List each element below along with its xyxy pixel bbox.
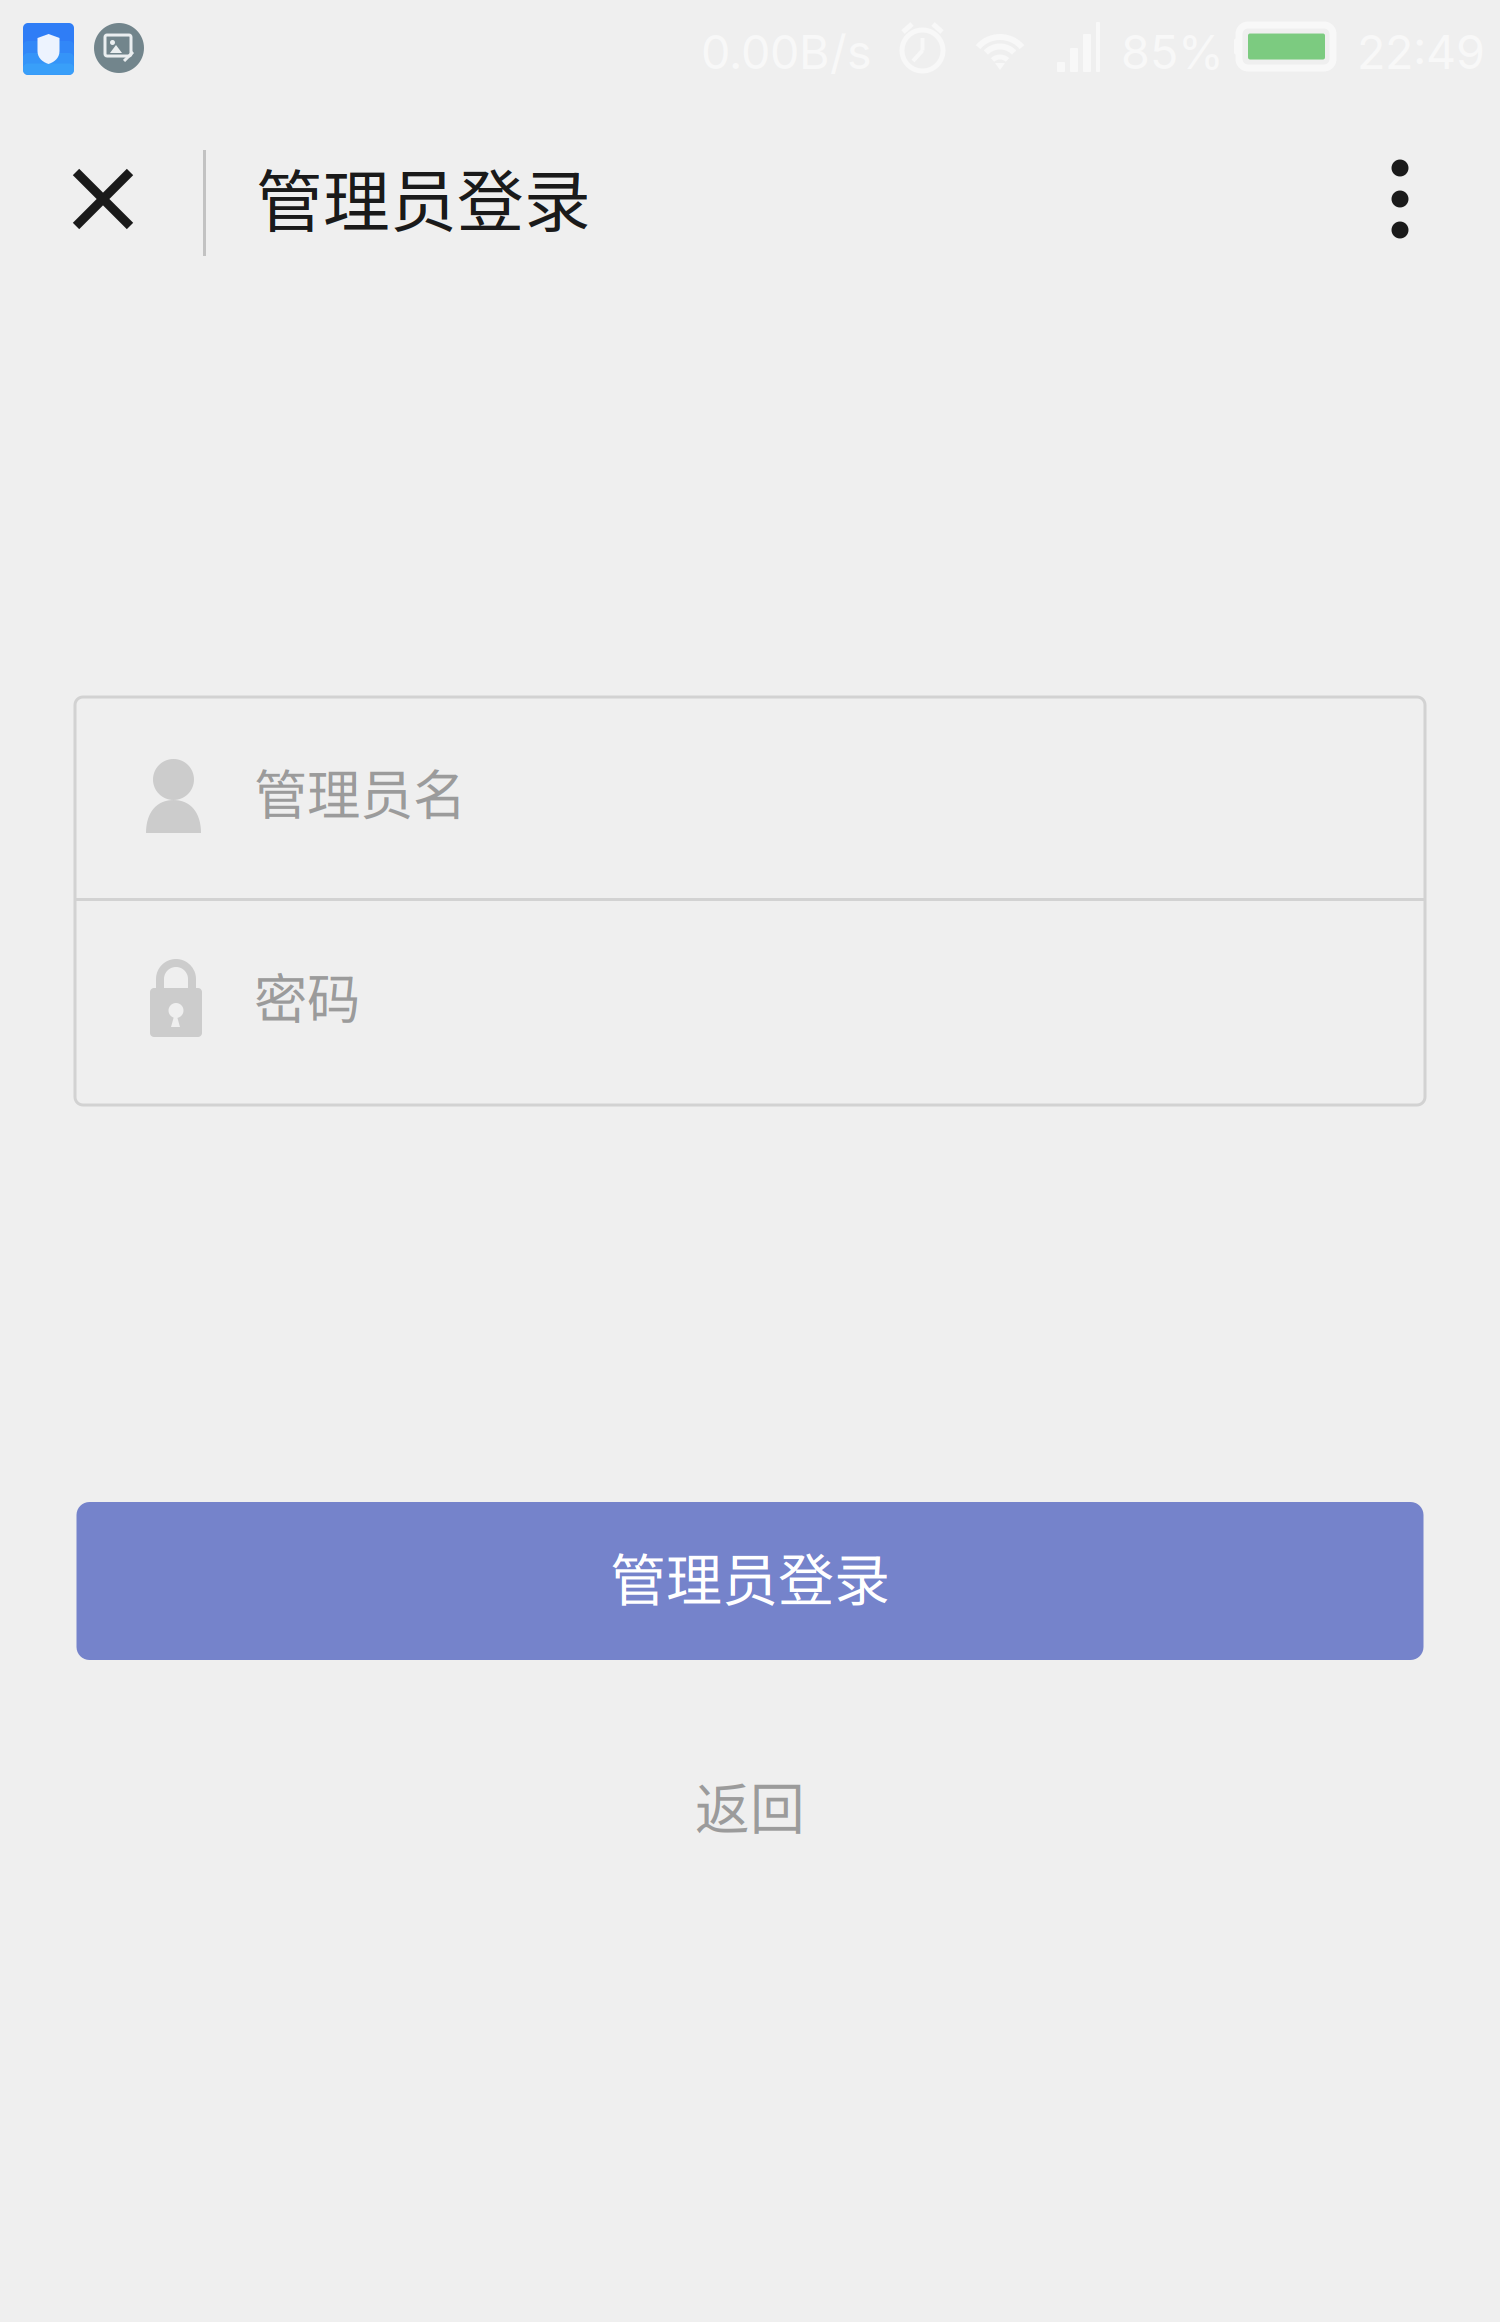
staticText: 管理员登录 [610,1535,890,1617]
staticText: 管理员登录 [256,149,591,245]
button[interactable]: 密码 [75,901,1425,1105]
button[interactable]: Close [41,104,165,294]
staticText: 85% [1121,24,1224,80]
button[interactable]: 返回 [76,1762,1423,1848]
staticText: 密码 [254,957,360,1034]
button[interactable]: More options [1340,104,1460,294]
staticText: 返回 [695,1765,805,1845]
staticText: 管理员名 [254,753,466,830]
button[interactable]: 管理员名 [75,697,1425,901]
button[interactable]: 管理员登录 [76,1502,1423,1660]
staticText: 22:49 [1357,24,1485,80]
staticText: 0.00B/s [701,24,872,80]
